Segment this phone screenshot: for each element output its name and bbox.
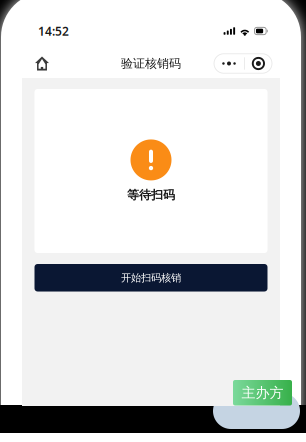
button[interactable]: 首页	[28, 50, 56, 76]
staticText: 14:52	[38, 23, 69, 39]
button[interactable]: 主办方	[233, 380, 292, 405]
button[interactable]: 更多	[214, 54, 272, 73]
staticText: 等待扫码	[127, 187, 175, 202]
button[interactable]: 开始扫码核销	[34, 264, 267, 291]
staticText: 验证核销码	[121, 56, 181, 71]
staticText: 开始扫码核销	[121, 271, 181, 284]
staticText: 主办方	[241, 384, 283, 401]
